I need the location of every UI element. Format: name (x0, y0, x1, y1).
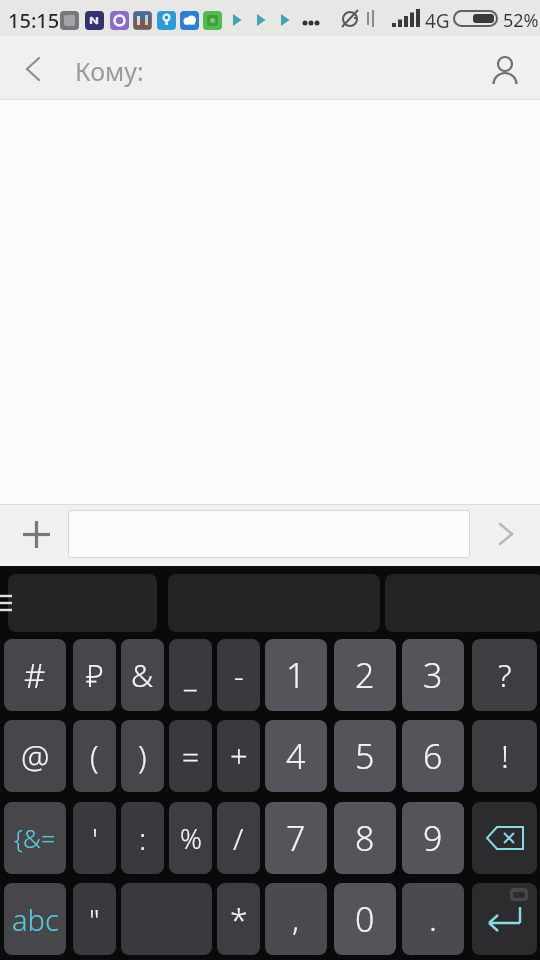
staticText: . (429, 897, 437, 941)
button[interactable]: = (169, 720, 212, 792)
staticText: 3 (423, 652, 443, 698)
staticText: / (233, 818, 244, 859)
button[interactable]: 9 (402, 802, 464, 874)
staticText: ) (138, 735, 147, 777)
button[interactable]: 1 (265, 639, 327, 711)
staticText: ₽ (86, 654, 104, 696)
button[interactable]: 4 (265, 720, 327, 792)
button[interactable] (472, 802, 537, 874)
staticText: * (230, 897, 248, 941)
button[interactable]: 5 (334, 720, 396, 792)
staticText: 52% (503, 8, 539, 33)
button[interactable]: " (73, 883, 116, 955)
staticText: 1 (286, 652, 306, 698)
button[interactable]: ! (472, 720, 537, 792)
button[interactable]: / (217, 802, 260, 874)
staticText: abc (12, 900, 59, 939)
button[interactable]: 7 (265, 802, 327, 874)
button[interactable]: # (4, 639, 66, 711)
button[interactable]: % (169, 802, 212, 874)
button[interactable]: * (217, 883, 260, 955)
button[interactable] (472, 883, 537, 955)
button[interactable]: ₽ (73, 639, 116, 711)
staticText: _ (184, 655, 197, 696)
button[interactable]: _ (169, 639, 212, 711)
button[interactable] (68, 510, 470, 558)
staticText: & (131, 654, 154, 696)
button[interactable]: ) (121, 720, 164, 792)
staticText: @ (21, 734, 50, 778)
staticText: ? (498, 653, 512, 697)
staticText: Кому: (75, 54, 144, 88)
staticText: 4 (286, 733, 306, 779)
button[interactable] (8, 574, 157, 632)
staticText: 2 (355, 652, 375, 698)
staticText: - (234, 655, 244, 696)
staticText: , (292, 897, 300, 941)
staticText: 7 (286, 815, 306, 861)
button[interactable] (484, 512, 528, 556)
staticText: ! (501, 734, 509, 778)
staticText: 5 (355, 733, 375, 779)
button[interactable]: 3 (402, 639, 464, 711)
staticText: # (24, 653, 46, 698)
button[interactable]: 6 (402, 720, 464, 792)
button[interactable]: 8 (334, 802, 396, 874)
staticText: 4G (425, 8, 450, 34)
staticText: 6 (423, 733, 443, 779)
button[interactable]: abc (4, 883, 66, 955)
staticText: ( (90, 735, 99, 777)
button[interactable]: {&= (4, 802, 66, 874)
button[interactable]: ? (472, 639, 537, 711)
staticText: ' (92, 818, 98, 859)
staticText: 8 (355, 815, 375, 861)
button[interactable]: : (121, 802, 164, 874)
button[interactable]: 2 (334, 639, 396, 711)
button[interactable]: - (217, 639, 260, 711)
button[interactable]: . (402, 883, 464, 955)
staticText: + (230, 735, 248, 777)
button[interactable]: + (217, 720, 260, 792)
button[interactable]: ( (73, 720, 116, 792)
button[interactable]: @ (4, 720, 66, 792)
button[interactable]: ' (73, 802, 116, 874)
staticText: " (89, 900, 100, 939)
button[interactable] (121, 883, 212, 955)
staticText: 0 (355, 896, 375, 942)
button[interactable]: , (265, 883, 327, 955)
staticText: 9 (423, 815, 443, 861)
button[interactable] (14, 512, 58, 556)
staticText: : (139, 818, 147, 859)
staticText: {&= (14, 821, 56, 855)
button[interactable] (10, 46, 56, 92)
button[interactable]: & (121, 639, 164, 711)
staticText: = (182, 736, 200, 777)
button[interactable]: 0 (334, 883, 396, 955)
staticText: 15:15 (8, 7, 60, 34)
staticText: % (180, 820, 202, 857)
button[interactable] (482, 46, 528, 92)
